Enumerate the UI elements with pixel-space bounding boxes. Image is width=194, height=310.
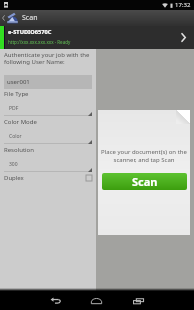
- staticText: Color Mode: [4, 118, 37, 126]
- staticText: Place your document(s) on the scanner, a…: [101, 148, 187, 164]
- button[interactable]: Duplex: [4, 174, 92, 182]
- button[interactable]: Back: [0, 10, 7, 26]
- staticText: Scan: [132, 174, 158, 189]
- button[interactable]: Scan: [102, 173, 187, 190]
- staticText: PDF: [9, 105, 19, 112]
- button[interactable]: Home: [86, 291, 107, 310]
- button[interactable]: PDF: [4, 99, 92, 116]
- staticText: Resolution: [4, 146, 34, 154]
- button[interactable]: Recents: [128, 291, 149, 310]
- staticText: 17:32: [175, 1, 191, 9]
- staticText: e-STUDIO6570C: [8, 28, 52, 36]
- button[interactable]: 300: [4, 155, 92, 172]
- staticText: Scan: [22, 13, 38, 23]
- staticText: 300: [9, 161, 18, 168]
- button[interactable]: Color: [4, 127, 92, 144]
- button[interactable]: Change device: [172, 26, 194, 49]
- button[interactable]: user001: [4, 75, 92, 89]
- button[interactable]: Back: [45, 291, 66, 310]
- staticText: Duplex: [4, 174, 24, 182]
- staticText: Authenticate your job with the following…: [4, 51, 90, 66]
- staticText: user001: [7, 78, 30, 86]
- staticText: File Type: [4, 90, 29, 98]
- staticText: http://xxx.xxx.xxx.xxx - Ready: [8, 39, 71, 45]
- staticText: Color: [9, 133, 22, 140]
